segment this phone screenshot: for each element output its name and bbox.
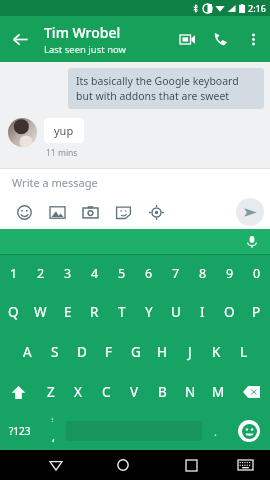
button[interactable]: Location	[140, 196, 173, 229]
button[interactable]: J	[176, 332, 203, 372]
staticText: B	[158, 383, 167, 401]
staticText: G	[131, 343, 141, 361]
staticText: Last seen just now	[44, 43, 127, 56]
button[interactable]: O	[216, 292, 243, 332]
button[interactable]: R	[81, 292, 108, 332]
button[interactable]: M	[204, 372, 232, 412]
button[interactable]: Back	[38, 450, 73, 480]
staticText: J	[188, 343, 192, 361]
button[interactable]: P	[243, 292, 270, 332]
staticText: Tim Wrobel	[44, 23, 121, 42]
button[interactable]: Send image	[41, 196, 74, 229]
button[interactable]: Send	[236, 198, 264, 226]
staticText: Q	[8, 303, 19, 321]
button[interactable]: Contact avatar	[8, 118, 37, 147]
button[interactable]: D	[68, 332, 95, 372]
staticText: Z	[47, 383, 55, 401]
staticText: I	[200, 303, 205, 321]
button[interactable]: E	[54, 292, 81, 332]
button[interactable]: 9	[216, 255, 243, 292]
button[interactable]: 6	[135, 255, 162, 292]
button[interactable]: X	[64, 372, 92, 412]
button[interactable]: 2	[27, 255, 54, 292]
button[interactable]: Sticker	[107, 196, 140, 229]
staticText: W	[34, 303, 47, 321]
button[interactable]: I	[189, 292, 216, 332]
button[interactable]: 7	[162, 255, 189, 292]
button[interactable]: Camera	[74, 196, 107, 229]
button[interactable]: K	[203, 332, 230, 372]
button[interactable]: yup	[44, 118, 84, 143]
staticText: C	[102, 383, 111, 401]
staticText: 8	[199, 265, 207, 282]
button[interactable]: Video call	[170, 22, 204, 56]
staticText: N	[185, 383, 196, 401]
button[interactable]: U	[162, 292, 189, 332]
staticText: 11 mins	[46, 147, 78, 159]
button[interactable]: N	[176, 372, 204, 412]
button[interactable]: Shift	[0, 372, 37, 412]
staticText: H	[157, 343, 168, 361]
button[interactable]: Back	[0, 19, 40, 59]
staticText: 2:16	[248, 2, 266, 14]
button[interactable]: A	[13, 332, 41, 372]
button[interactable]: F	[95, 332, 122, 372]
button[interactable]: 8	[189, 255, 216, 292]
button[interactable]: Voice input	[242, 232, 262, 252]
staticText: 7	[172, 265, 180, 282]
button[interactable]: G	[122, 332, 149, 372]
button[interactable]: Z	[37, 372, 64, 412]
staticText: Its basically the Google keyboard but wi…	[76, 74, 256, 103]
button[interactable]: S	[41, 332, 68, 372]
staticText: R	[90, 303, 99, 321]
staticText: P	[252, 303, 261, 321]
staticText: Write a message	[12, 175, 98, 190]
button[interactable]: W	[27, 292, 54, 332]
staticText: V	[130, 383, 139, 401]
button[interactable]: Y	[135, 292, 162, 332]
staticText: O	[224, 303, 235, 321]
button[interactable]: Call	[204, 22, 238, 56]
staticText: T	[118, 303, 126, 321]
staticText: ,	[52, 429, 55, 444]
button[interactable]: T	[108, 292, 135, 332]
button[interactable]: L	[230, 332, 257, 372]
button[interactable]: Emoji	[228, 412, 270, 450]
button[interactable]: Recent apps	[173, 450, 209, 480]
button[interactable]: 5	[108, 255, 135, 292]
staticText: E	[64, 303, 72, 321]
button[interactable]: Emoji	[8, 196, 41, 229]
button[interactable]: ?123	[0, 412, 40, 450]
button[interactable]: B	[148, 372, 176, 412]
staticText: 3	[64, 265, 72, 282]
staticText: 1	[10, 265, 18, 282]
staticText: .	[214, 424, 217, 439]
button[interactable]: Q	[0, 292, 27, 332]
button[interactable]: H	[149, 332, 176, 372]
button[interactable]: Comma	[40, 412, 66, 450]
button[interactable]: C	[92, 372, 120, 412]
staticText: 5	[118, 265, 126, 282]
button[interactable]: Backspace	[232, 372, 270, 412]
button[interactable]: Switch keyboard	[227, 450, 263, 480]
staticText: X	[74, 383, 82, 401]
staticText: ?123	[9, 424, 31, 438]
staticText: 6	[145, 265, 153, 282]
button[interactable]: Home	[105, 450, 141, 480]
staticText: D	[77, 343, 87, 361]
button[interactable]: 1	[0, 255, 27, 292]
staticText: 4	[91, 265, 99, 282]
staticText: yup	[54, 123, 74, 138]
button[interactable]: V	[120, 372, 148, 412]
button[interactable]: Its basically the Google keyboard but wi…	[68, 68, 264, 109]
staticText: U	[171, 303, 181, 321]
button[interactable]: 0	[243, 255, 270, 292]
button[interactable]: More options	[238, 24, 268, 54]
button[interactable]: 3	[54, 255, 81, 292]
staticText: A	[23, 343, 32, 361]
button[interactable]: 4	[81, 255, 108, 292]
staticText: 2	[37, 265, 45, 282]
button[interactable]: Period	[202, 412, 228, 450]
staticText: S	[51, 343, 59, 361]
